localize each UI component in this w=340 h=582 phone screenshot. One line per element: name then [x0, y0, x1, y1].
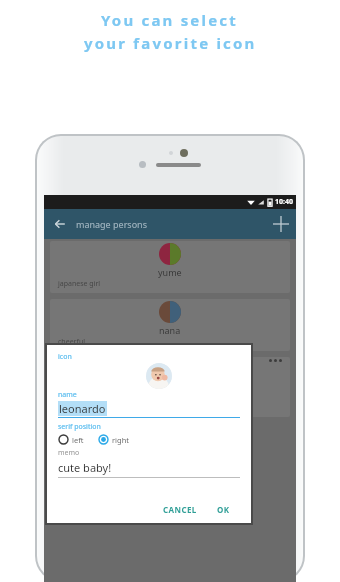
staticText: OK [217, 504, 230, 515]
button[interactable]: OK [213, 502, 234, 517]
staticText: japanese girl [58, 279, 101, 289]
staticText: name [58, 390, 77, 400]
staticText: smart girl [58, 403, 90, 413]
button[interactable]: More options [269, 359, 282, 362]
button[interactable]: Back [50, 214, 70, 234]
button[interactable]: right [98, 434, 129, 445]
staticText: your favorite icon [84, 33, 257, 53]
button[interactable]: nana [50, 299, 290, 351]
button[interactable]: Add person [270, 213, 292, 235]
staticText: cute baby! [58, 460, 112, 475]
staticText: leonardo [59, 401, 106, 416]
staticText: memo [58, 448, 80, 458]
staticText: nana [159, 324, 181, 336]
button[interactable]: Choose icon [146, 363, 172, 389]
button[interactable]: left [58, 434, 84, 445]
button[interactable]: CANCEL [159, 502, 201, 517]
staticText: manage persons [76, 218, 147, 230]
staticText: cheerful [58, 337, 86, 347]
staticText: right [112, 435, 129, 445]
staticText: yume [158, 266, 182, 278]
staticText: CANCEL [163, 504, 197, 515]
staticText: icon [58, 352, 72, 362]
button[interactable]: More options [50, 357, 290, 417]
staticText: left [72, 435, 84, 445]
button[interactable]: yume [50, 241, 290, 293]
staticText: 10:40 [275, 197, 293, 207]
staticText: serif position [58, 422, 101, 432]
staticText: You can select [101, 10, 239, 30]
